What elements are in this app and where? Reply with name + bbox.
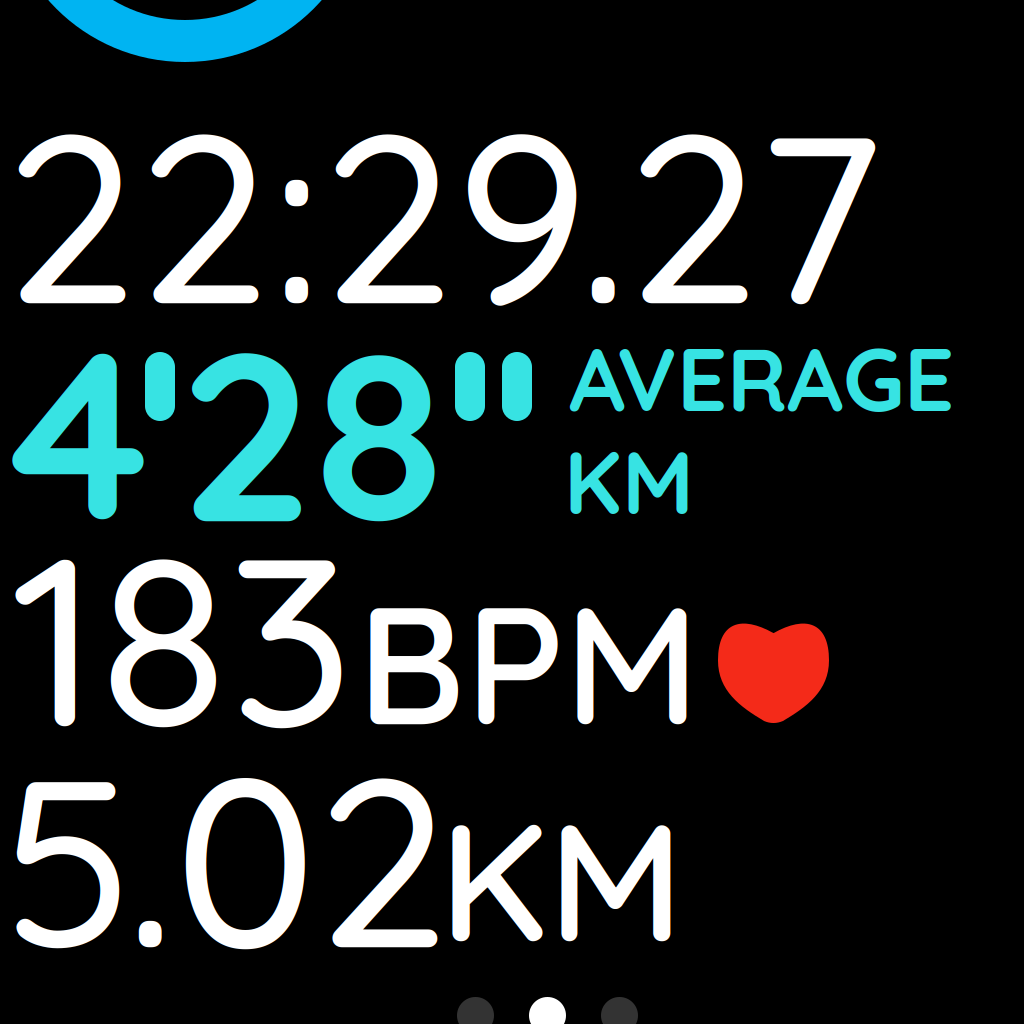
staticText: AVERAGE bbox=[569, 323, 954, 433]
staticText: 183 bbox=[10, 489, 353, 786]
staticText: KM bbox=[439, 776, 684, 983]
staticText: 22:29.27 bbox=[5, 66, 882, 363]
staticText: 5.02 bbox=[1, 710, 450, 1007]
staticText: KM bbox=[564, 426, 694, 536]
staticText: 28 bbox=[179, 284, 444, 581]
staticText: BPM bbox=[357, 559, 700, 766]
staticText: 4 bbox=[10, 282, 150, 579]
